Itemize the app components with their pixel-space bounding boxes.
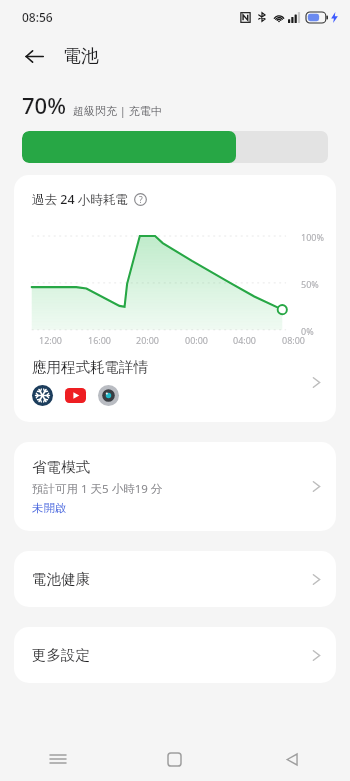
button[interactable]: 最近應用: [0, 737, 116, 781]
staticText: 50%: [301, 278, 319, 290]
staticText: 超級閃充 | 充電中: [73, 103, 162, 118]
button[interactable]: 說明: [133, 192, 148, 207]
staticText: 未開啟: [32, 501, 67, 515]
button[interactable]: 返回: [18, 40, 50, 72]
staticText: 08:56: [22, 9, 53, 25]
staticText: 電池: [63, 45, 99, 68]
staticText: 08:00: [282, 334, 306, 346]
staticText: 12:00: [39, 334, 63, 346]
staticText: ?: [139, 194, 143, 206]
staticText: 20:00: [136, 334, 160, 346]
staticText: 0%: [301, 325, 314, 337]
staticText: 電池健康: [32, 570, 311, 588]
button[interactable]: 主畫面: [116, 737, 233, 781]
button[interactable]: 更多設定: [14, 627, 336, 683]
staticText: 應用程式耗電詳情: [32, 358, 148, 376]
button[interactable]: 省電模式: [14, 442, 336, 531]
staticText: 16:00: [88, 334, 112, 346]
staticText: 00:00: [185, 334, 209, 346]
staticText: 更多設定: [32, 646, 311, 664]
button[interactable]: 返回: [233, 737, 350, 781]
staticText: 省電模式: [32, 458, 90, 476]
staticText: 04:00: [233, 334, 257, 346]
staticText: 過去 24 小時耗電: [32, 191, 128, 208]
button[interactable]: 應用程式耗電詳情: [14, 352, 336, 422]
button[interactable]: 電池健康: [14, 551, 336, 607]
staticText: 預計可用 1 天5 小時19 分: [32, 481, 163, 497]
staticText: 100%: [301, 231, 324, 243]
staticText: 70%: [22, 90, 66, 120]
